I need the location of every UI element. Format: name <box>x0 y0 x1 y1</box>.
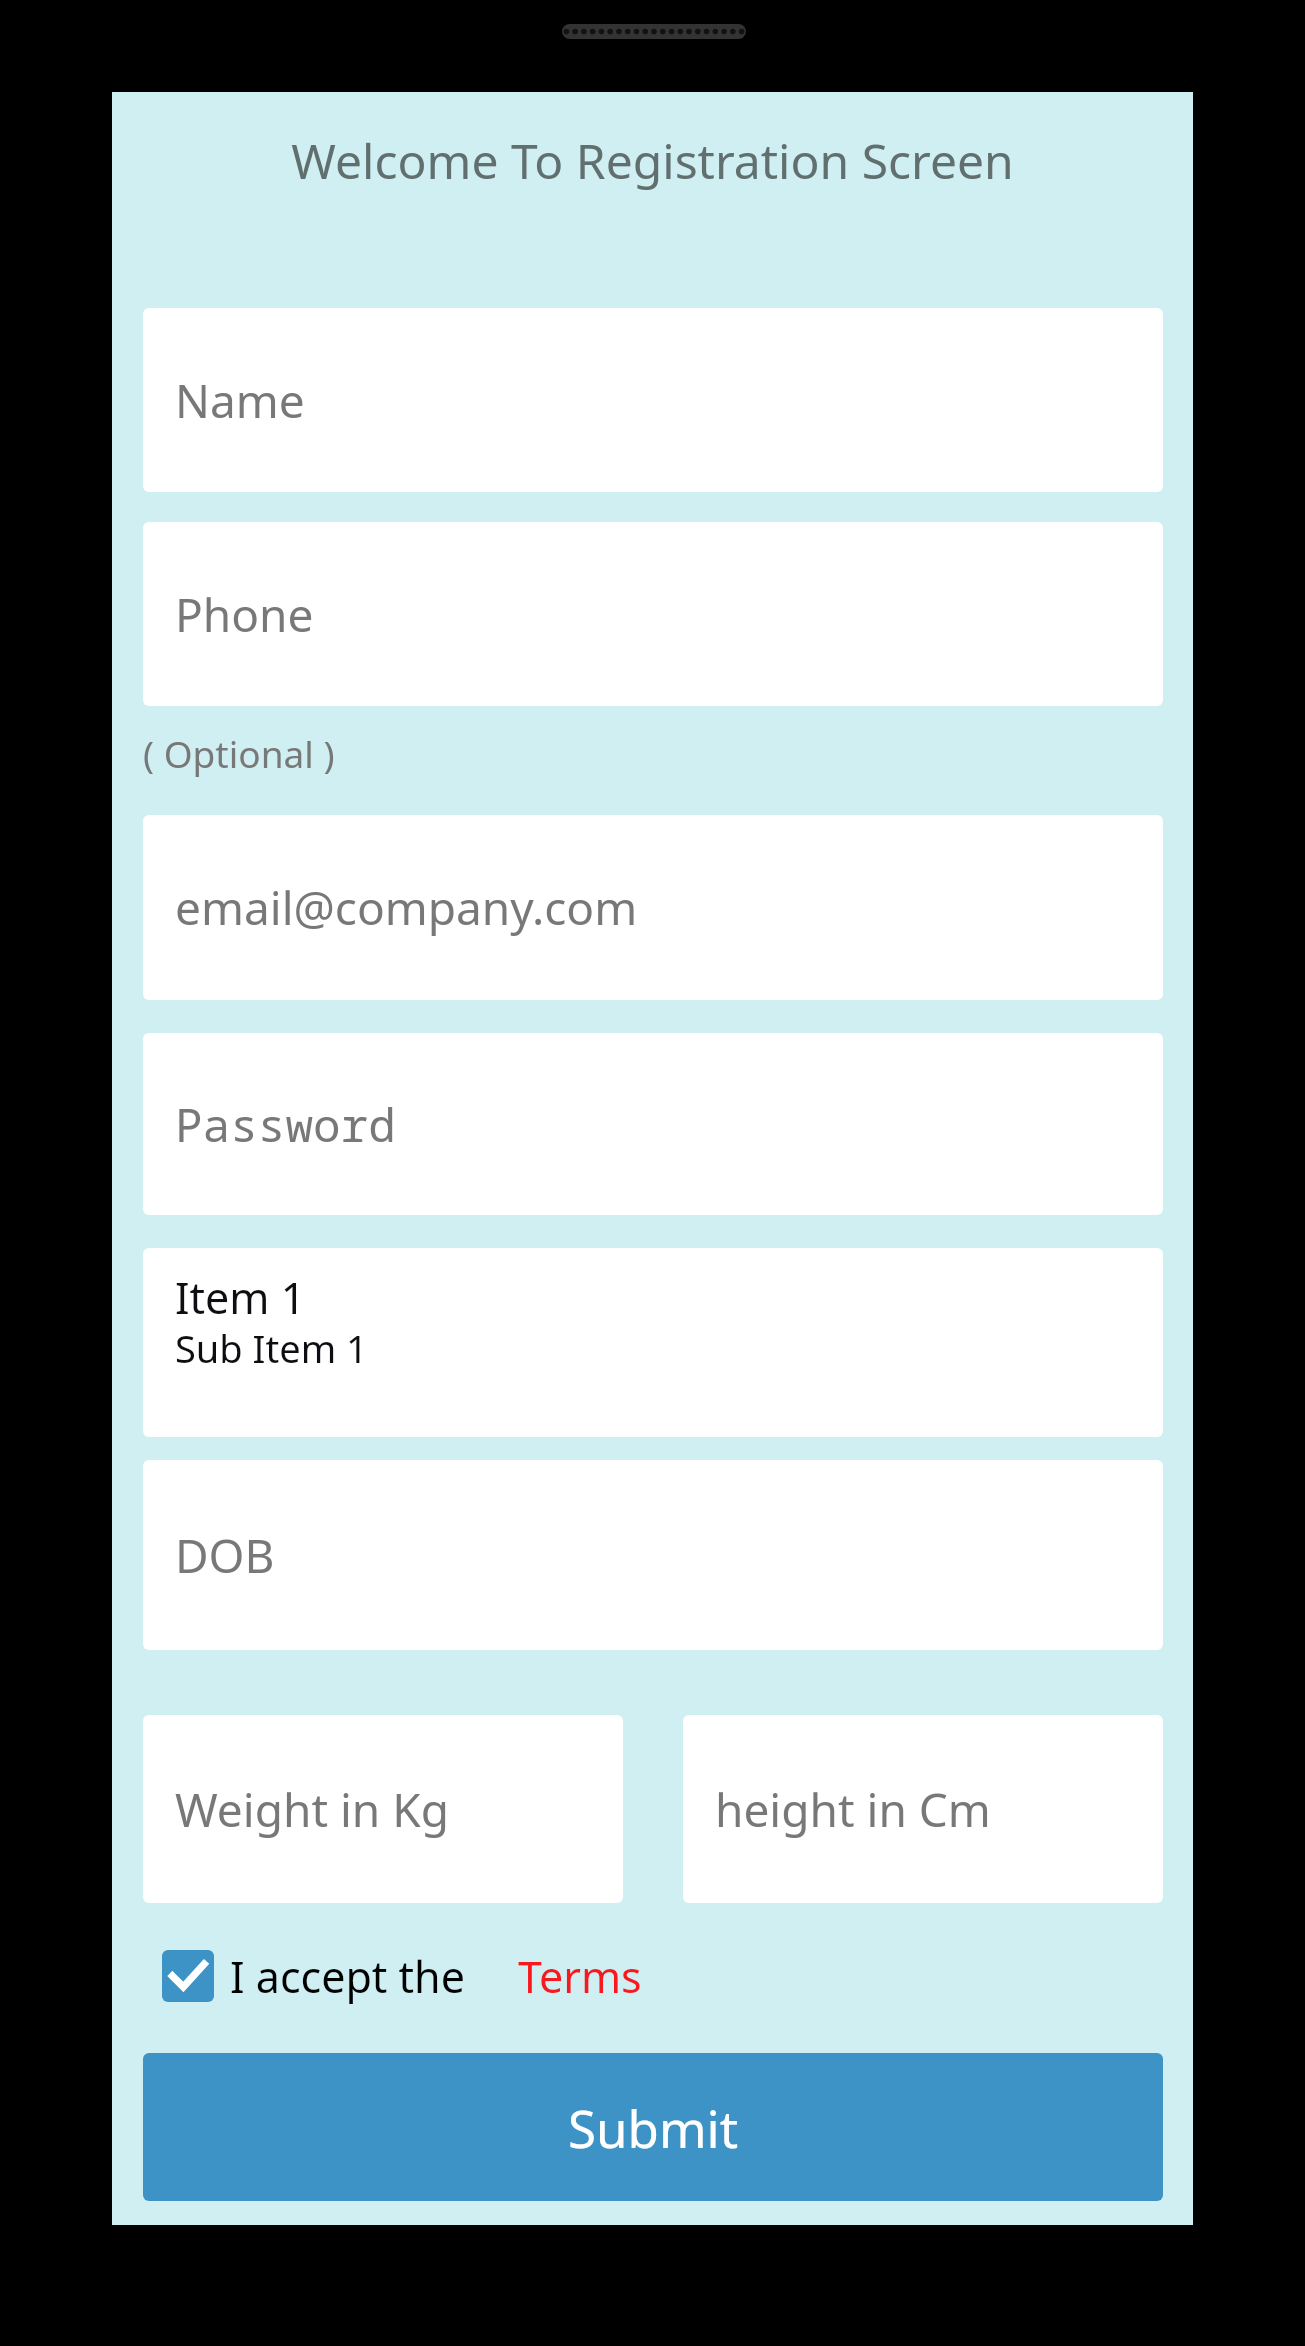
staticText: Password <box>175 1093 396 1156</box>
staticText: email@company.com <box>175 876 638 939</box>
button[interactable]: Item 1 <box>143 1248 1163 1437</box>
button[interactable]: Terms <box>518 1945 663 2007</box>
staticText: Phone <box>175 583 314 646</box>
staticText: DOB <box>175 1524 275 1587</box>
staticText: Item 1 <box>175 1268 306 1327</box>
staticText: Terms <box>518 1947 642 2006</box>
button[interactable]: email@company.com <box>143 815 1163 1000</box>
button[interactable]: Phone <box>143 522 1163 706</box>
staticText: Welcome To Registration Screen <box>112 128 1193 192</box>
staticText: height in Cm <box>715 1778 991 1841</box>
staticText: Submit <box>568 2093 739 2162</box>
staticText: Weight in Kg <box>175 1778 449 1841</box>
button[interactable]: I accept the <box>230 1945 490 2007</box>
button[interactable]: height in Cm <box>683 1715 1163 1903</box>
staticText: ( Optional ) <box>143 728 335 778</box>
staticText: I accept the <box>230 1947 465 2006</box>
button[interactable]: DOB <box>143 1460 1163 1650</box>
button[interactable]: Accept terms checkbox <box>162 1950 214 2002</box>
button[interactable]: Submit <box>143 2053 1163 2201</box>
staticText: Name <box>175 369 305 432</box>
button[interactable]: Name <box>143 308 1163 492</box>
button[interactable]: Weight in Kg <box>143 1715 623 1903</box>
staticText: Sub Item 1 <box>175 1322 368 1374</box>
button[interactable]: Password <box>143 1033 1163 1215</box>
